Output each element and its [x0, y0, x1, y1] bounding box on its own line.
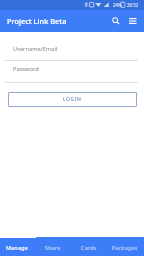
staticText: Manage — [6, 244, 28, 251]
staticText: LOGIN — [63, 96, 82, 103]
staticText: Username/Email — [13, 45, 58, 53]
staticText: 24% — [113, 2, 122, 8]
staticText: Packages — [112, 244, 138, 251]
staticText: Password — [13, 65, 39, 73]
button[interactable]: Manage — [0, 238, 36, 256]
staticText: Cards — [81, 244, 97, 251]
button[interactable]: Menu — [123, 10, 142, 31]
button[interactable]: Cards — [72, 238, 108, 256]
staticText: Share — [45, 244, 61, 251]
button[interactable]: Share — [36, 238, 72, 256]
staticText: 20:52 — [127, 2, 139, 8]
staticText: Project Link Beta — [7, 16, 67, 26]
button[interactable]: Search — [106, 10, 125, 31]
button[interactable]: Packages — [108, 238, 144, 256]
button[interactable]: LOGIN — [8, 92, 137, 107]
